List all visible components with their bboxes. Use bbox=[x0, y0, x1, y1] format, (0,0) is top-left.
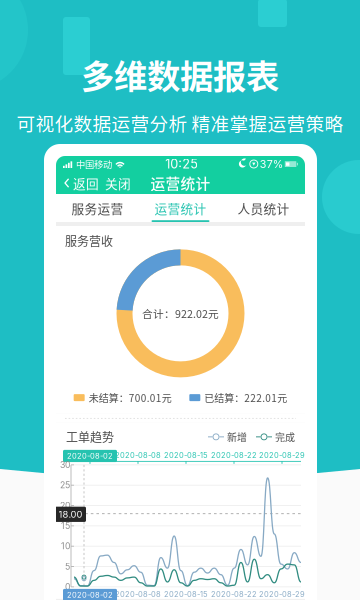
staticText: 2020-08-02 bbox=[67, 590, 113, 599]
staticText: 37% bbox=[260, 157, 283, 170]
staticText: 运营统计 bbox=[150, 172, 210, 194]
staticText: 2020-08-08 bbox=[115, 590, 161, 599]
staticText: 2020-08-02 bbox=[67, 451, 113, 460]
staticText: 2020-08-29 bbox=[259, 590, 305, 599]
staticText: 10 bbox=[61, 541, 70, 551]
button[interactable]: 服务运营 bbox=[56, 194, 139, 222]
button[interactable]: 运营统计 bbox=[139, 194, 222, 222]
button[interactable]: 关闭 bbox=[99, 174, 131, 192]
staticText: 15 bbox=[61, 521, 70, 531]
staticText: 人员统计 bbox=[237, 199, 289, 217]
staticText: 工单趋势 bbox=[66, 428, 114, 446]
staticText: 中国移动 bbox=[76, 157, 112, 171]
staticText: 运营统计 bbox=[154, 199, 206, 217]
staticText: 2020-08-29 bbox=[259, 451, 305, 460]
staticText: 已结算：222.01元 bbox=[204, 390, 287, 405]
staticText: 0 bbox=[65, 582, 70, 592]
staticText: 新增 bbox=[227, 430, 247, 444]
button[interactable]: 人员统计 bbox=[222, 194, 305, 222]
staticText: 服务营收 bbox=[65, 232, 113, 249]
staticText: 2020-08-15 bbox=[164, 451, 208, 460]
staticText: 18.00 bbox=[58, 509, 82, 520]
staticText: 多维数据报表 bbox=[81, 50, 279, 98]
staticText: 未结算：700.01元 bbox=[89, 390, 172, 405]
button[interactable]: 返回 bbox=[64, 174, 99, 192]
staticText: 5 bbox=[65, 561, 70, 572]
staticText: 关闭 bbox=[105, 174, 131, 192]
staticText: 完成 bbox=[275, 430, 295, 444]
staticText: 2020-08-22 bbox=[211, 451, 257, 460]
staticText: 25 bbox=[60, 480, 70, 490]
staticText: 合计：922.02元 bbox=[142, 306, 219, 321]
staticText: 服务运营 bbox=[71, 199, 123, 217]
staticText: 2020-08-22 bbox=[211, 590, 257, 599]
staticText: 2020-08-08 bbox=[115, 451, 161, 460]
staticText: 10:25 bbox=[165, 156, 198, 172]
staticText: 返回 bbox=[73, 174, 99, 192]
staticText: 可视化数据运营分析 精准掌握运营策略 bbox=[16, 109, 343, 136]
staticText: 30 bbox=[60, 460, 70, 470]
staticText: 20 bbox=[60, 500, 70, 511]
staticText: 2020-08-15 bbox=[164, 590, 208, 599]
